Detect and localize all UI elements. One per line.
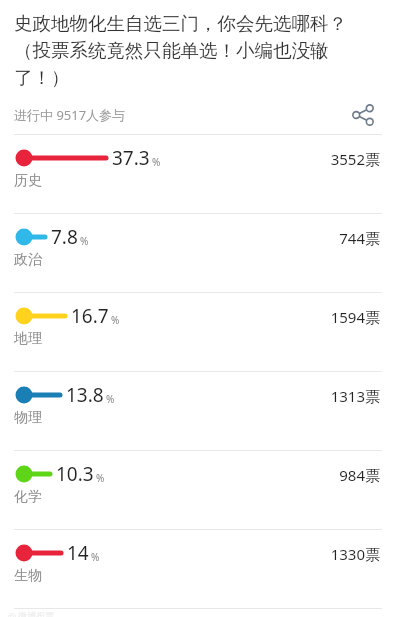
staticText: 1313票 xyxy=(330,386,380,406)
staticText: 1330票 xyxy=(330,544,380,564)
staticText: 1594票 xyxy=(330,307,380,327)
staticText: 生物 xyxy=(14,567,42,585)
staticText: 7.8 xyxy=(51,224,78,250)
staticText: 744票 xyxy=(339,228,380,248)
staticText: 地理 xyxy=(14,330,42,348)
staticText: 物理 xyxy=(14,409,42,427)
staticText: % xyxy=(80,234,89,248)
button[interactable]: 13.8 xyxy=(0,372,396,450)
button[interactable]: 37.3 xyxy=(0,135,396,213)
staticText: 历史 xyxy=(14,172,42,190)
staticText: % xyxy=(91,550,100,564)
staticText: 13.8 xyxy=(66,382,104,408)
button[interactable]: 10.3 xyxy=(0,451,396,529)
staticText: 10.3 xyxy=(56,461,94,487)
staticText: 14 xyxy=(67,540,89,566)
staticText: 进行中 9517人参与 xyxy=(14,106,126,124)
staticText: 化学 xyxy=(14,488,42,506)
button[interactable]: 16.7 xyxy=(0,293,396,371)
button[interactable]: 7.8 xyxy=(0,214,396,292)
staticText: % xyxy=(152,155,161,169)
staticText: ◎ 微博投票 xyxy=(8,609,55,617)
staticText: 3552票 xyxy=(330,149,380,169)
staticText: % xyxy=(111,313,120,327)
staticText: 政治 xyxy=(14,251,42,269)
staticText: % xyxy=(106,392,115,406)
staticText: % xyxy=(96,471,105,485)
button[interactable]: 14 xyxy=(0,530,396,608)
staticText: 史政地物化生自选三门，你会先选哪科？（投票系统竟然只能单选！小编也没辙了！） xyxy=(14,12,380,90)
staticText: 16.7 xyxy=(71,303,109,329)
staticText: 37.3 xyxy=(112,145,150,171)
staticText: 984票 xyxy=(339,465,380,485)
button[interactable]: Share xyxy=(344,96,382,134)
